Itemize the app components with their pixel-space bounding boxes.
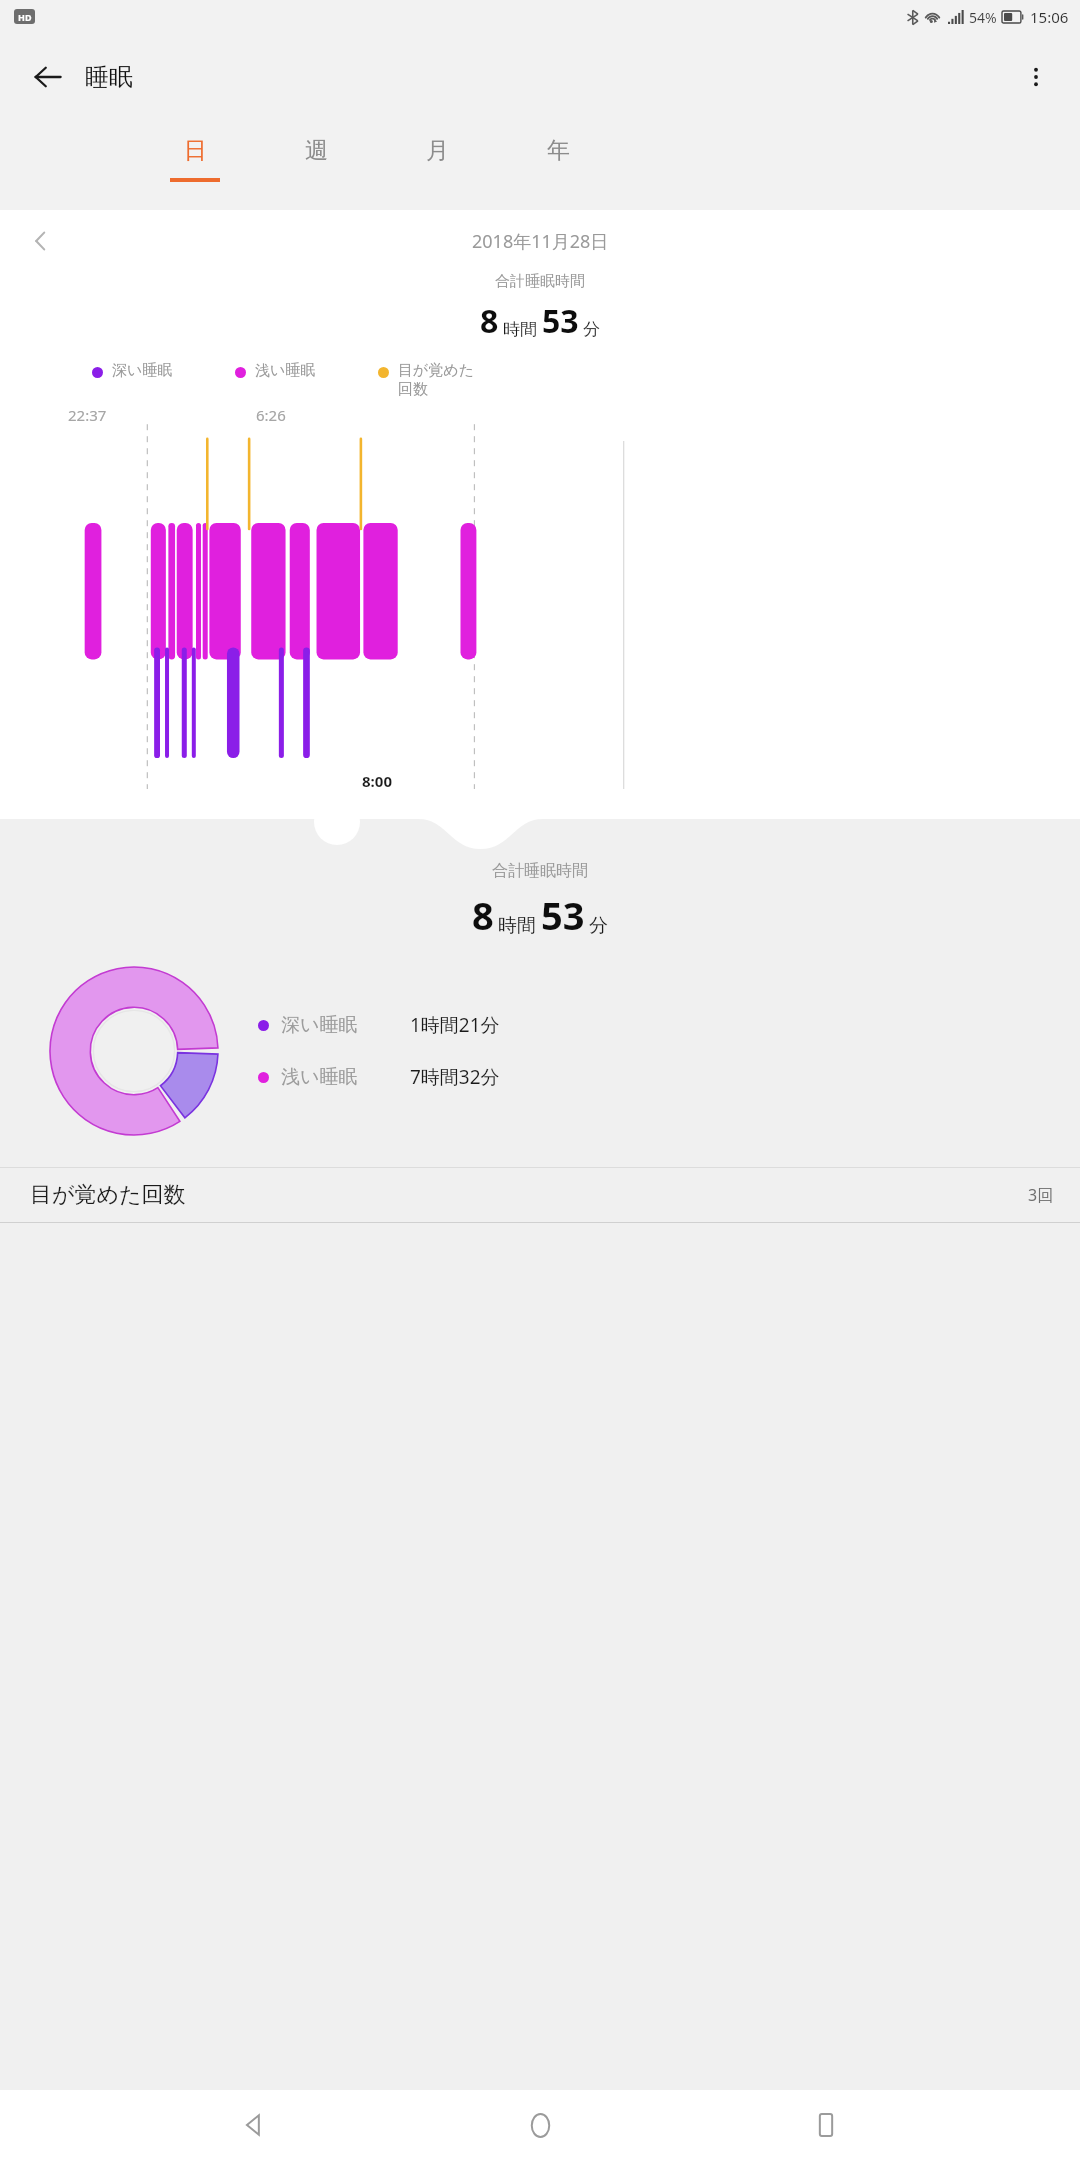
staticText: 時間 bbox=[503, 319, 537, 340]
staticText: 月 bbox=[426, 136, 449, 165]
button[interactable]: 年 bbox=[518, 120, 598, 210]
staticText: 目が覚めた回数 bbox=[30, 1181, 186, 1209]
button[interactable]: 目が覚めた回数 bbox=[0, 1168, 1080, 1222]
staticText: 7時間32分 bbox=[410, 1064, 500, 1090]
staticText: 分 bbox=[589, 914, 608, 938]
button[interactable]: Drag handle bbox=[314, 799, 360, 845]
staticText: 日 bbox=[184, 136, 207, 165]
button[interactable]: Back bbox=[222, 2093, 286, 2157]
staticText: 53 bbox=[541, 889, 585, 941]
staticText: 浅い睡眠 bbox=[281, 1065, 358, 1089]
staticText: 8 bbox=[480, 299, 499, 343]
staticText: HD bbox=[18, 11, 32, 23]
button[interactable]: 週 bbox=[276, 120, 356, 210]
staticText: 6:26 bbox=[256, 405, 286, 425]
staticText: 1時間21分 bbox=[410, 1012, 500, 1038]
staticText: 深い睡眠 bbox=[281, 1013, 358, 1037]
staticText: 睡眠 bbox=[85, 62, 133, 92]
staticText: 浅い睡眠 bbox=[255, 361, 316, 380]
staticText: 週 bbox=[305, 136, 328, 165]
staticText: 年 bbox=[547, 136, 570, 165]
staticText: 合計睡眠時間 bbox=[495, 272, 585, 291]
button[interactable]: Previous day bbox=[16, 216, 66, 266]
button[interactable]: 月 bbox=[397, 120, 477, 210]
staticText: 回数 bbox=[398, 380, 428, 399]
staticText: 深い睡眠 bbox=[112, 361, 173, 380]
button[interactable]: Recent apps bbox=[794, 2093, 858, 2157]
staticText: 54% bbox=[969, 8, 997, 27]
staticText: 目が覚めた bbox=[398, 361, 475, 380]
button[interactable]: Home bbox=[508, 2093, 572, 2157]
button[interactable]: More options bbox=[1010, 51, 1062, 103]
staticText: 2018年11月28日 bbox=[472, 229, 609, 254]
staticText: 3回 bbox=[1028, 1184, 1054, 1206]
button[interactable]: 日 bbox=[155, 120, 235, 210]
staticText: 時間 bbox=[498, 914, 536, 938]
staticText: 15:06 bbox=[1030, 7, 1069, 27]
staticText: 分 bbox=[583, 319, 600, 340]
staticText: 8:00 bbox=[362, 771, 392, 791]
button[interactable]: Back bbox=[20, 49, 76, 105]
staticText: 合計睡眠時間 bbox=[492, 861, 588, 881]
staticText: 53 bbox=[542, 299, 579, 343]
staticText: 22:37 bbox=[68, 405, 107, 425]
staticText: 8 bbox=[472, 889, 494, 941]
